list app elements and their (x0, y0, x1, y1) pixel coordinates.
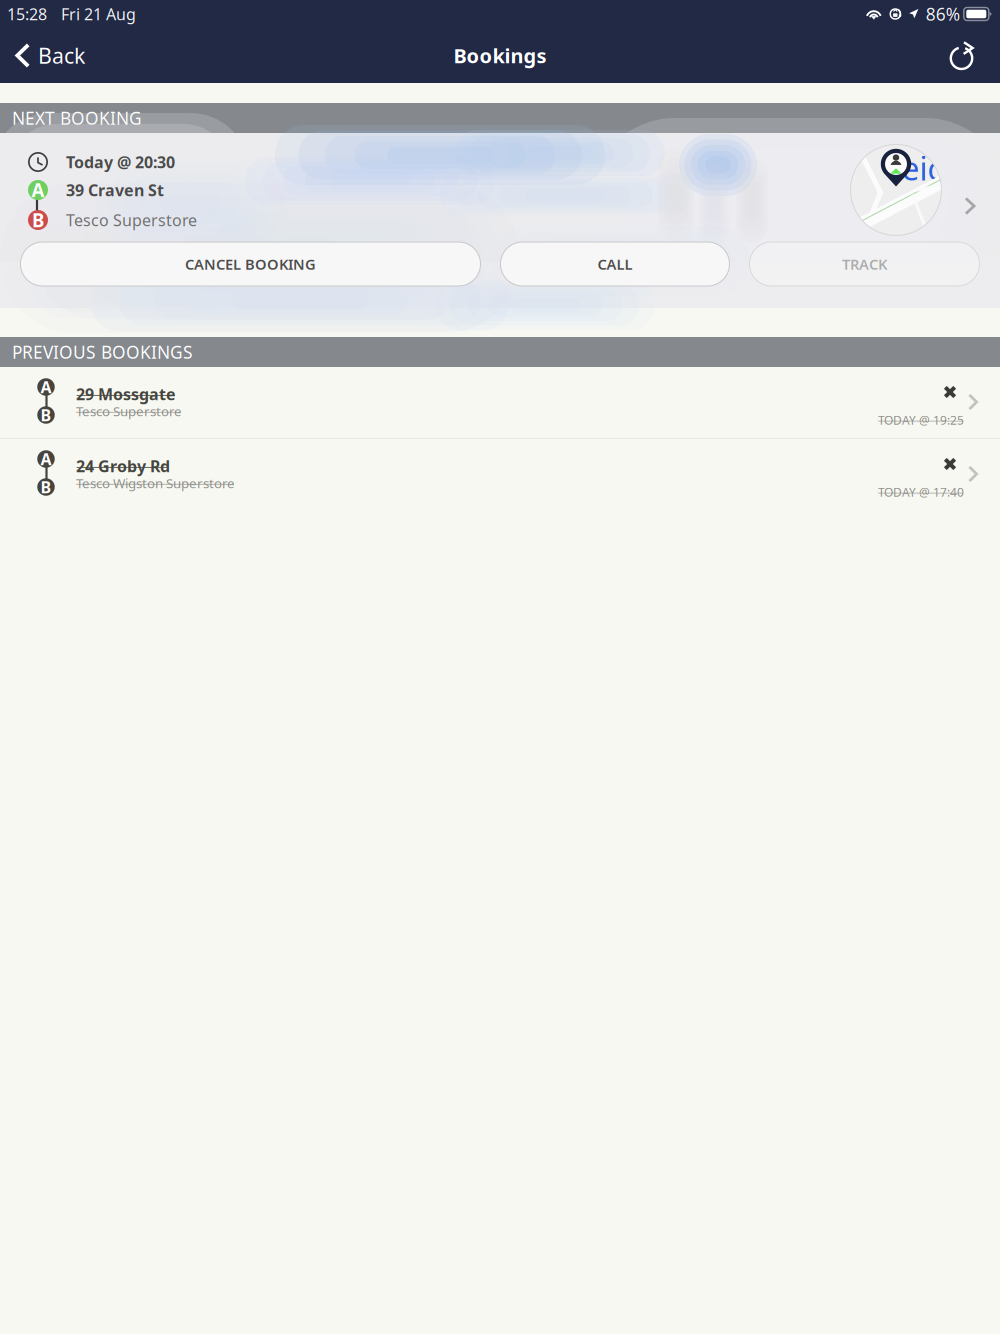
staticText: CANCEL BOOKING (185, 254, 316, 274)
staticText: A (31, 178, 44, 202)
button[interactable]: A (0, 133, 1000, 308)
button[interactable]: A (0, 367, 1000, 438)
staticText: Back (38, 41, 85, 70)
staticText: A (40, 376, 51, 398)
button[interactable]: CANCEL BOOKING (20, 242, 480, 286)
staticText: Tesco Superstore (76, 402, 182, 420)
staticText: Today @ 20:30 (66, 151, 175, 173)
staticText: Tesco Wigston Superstore (76, 474, 235, 492)
button[interactable]: A (0, 439, 1000, 510)
staticText: 86% (926, 2, 960, 25)
staticText: 29 Mossgate (76, 383, 176, 405)
button[interactable]: CALL (500, 242, 729, 286)
staticText: 39 Craven St (66, 179, 164, 201)
staticText: CALL (597, 254, 632, 274)
staticText: B (32, 208, 44, 232)
staticText: TODAY @ 17:40 (878, 484, 964, 500)
staticText: B (40, 476, 51, 498)
staticText: Tesco Superstore (66, 209, 197, 231)
button[interactable]: Refresh (935, 28, 1000, 83)
staticText: B (40, 404, 51, 426)
staticText: Fri 21 Aug (61, 3, 136, 25)
staticText: 24 Groby Rd (76, 455, 170, 477)
staticText: TODAY @ 19:25 (878, 412, 964, 428)
staticText: Bookings (453, 42, 546, 69)
staticText: TRACK (842, 254, 887, 274)
button[interactable]: Back (0, 28, 97, 83)
button[interactable]: TRACK (749, 242, 979, 286)
staticText: PREVIOUS BOOKINGS (12, 340, 193, 363)
staticText: NEXT BOOKING (12, 106, 142, 129)
staticText: A (40, 448, 51, 470)
staticText: 15:28 (7, 3, 47, 25)
staticText: eic (901, 147, 942, 189)
